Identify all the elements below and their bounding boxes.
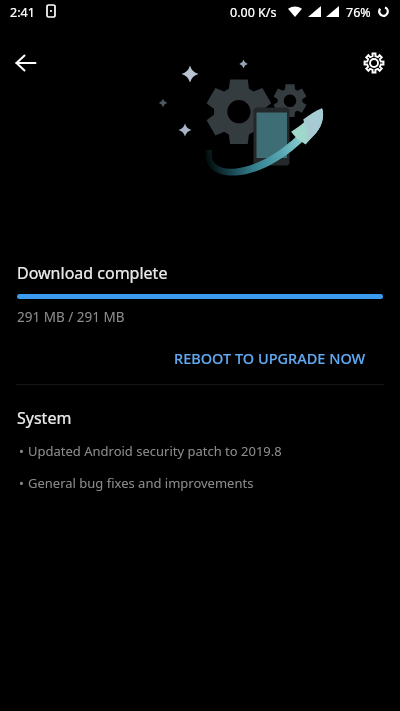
staticText: Download complete [17,262,168,284]
staticText: REBOOT TO UPGRADE NOW [174,348,366,368]
button[interactable]: Settings [350,39,398,87]
staticText: 291 MB / 291 MB [17,308,125,326]
staticText: Updated Android security patch to 2019.8 [28,442,282,460]
staticText: General bug fixes and improvements [28,474,254,492]
staticText: • [19,474,24,492]
staticText: 76% [346,4,371,21]
staticText: System [17,407,72,429]
button[interactable]: Back [2,39,50,87]
button[interactable]: REBOOT TO UPGRADE NOW [166,342,374,374]
staticText: 0.00 K/s [230,4,277,21]
staticText: • [19,442,24,460]
staticText: 2:41 [10,4,35,21]
